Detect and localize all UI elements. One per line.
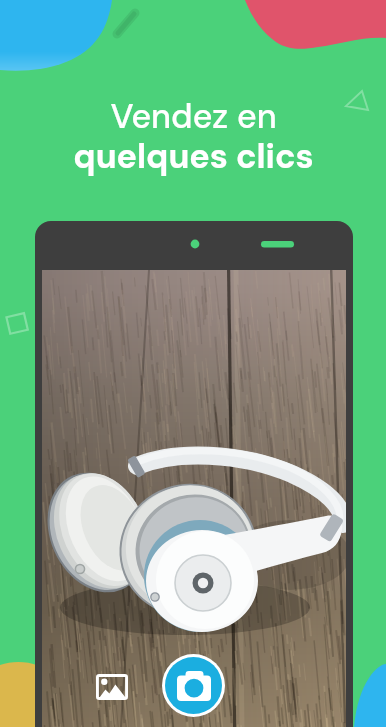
button[interactable]: Take photo xyxy=(162,654,225,717)
staticText: Vendez en xyxy=(110,94,277,138)
staticText: quelques clics xyxy=(73,134,314,178)
button[interactable]: Open gallery xyxy=(96,674,128,700)
